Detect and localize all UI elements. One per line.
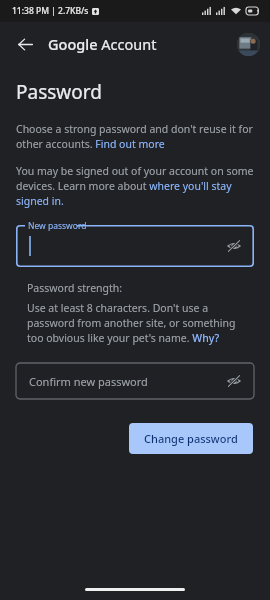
staticText: Confirm new password bbox=[29, 374, 148, 389]
button[interactable]: Back bbox=[10, 29, 40, 59]
staticText: Choose a strong password and don't reuse… bbox=[16, 122, 258, 151]
button[interactable]: Show password bbox=[223, 235, 245, 257]
staticText: Change password bbox=[144, 431, 238, 446]
staticText: Password bbox=[16, 79, 102, 105]
staticText: Use at least 8 characters. Don't use a p… bbox=[27, 301, 254, 345]
button[interactable]: Change password bbox=[129, 423, 253, 454]
button[interactable]: Account profile bbox=[237, 33, 260, 56]
staticText: Password strength: bbox=[27, 281, 123, 295]
staticText: 11:38 PM | 2.7KB/s bbox=[12, 5, 89, 17]
staticText: You may be signed out of your account on… bbox=[16, 164, 261, 208]
staticText: Google Account bbox=[48, 34, 157, 54]
staticText: New password bbox=[28, 220, 87, 232]
button[interactable]: Show confirm password bbox=[223, 370, 245, 392]
